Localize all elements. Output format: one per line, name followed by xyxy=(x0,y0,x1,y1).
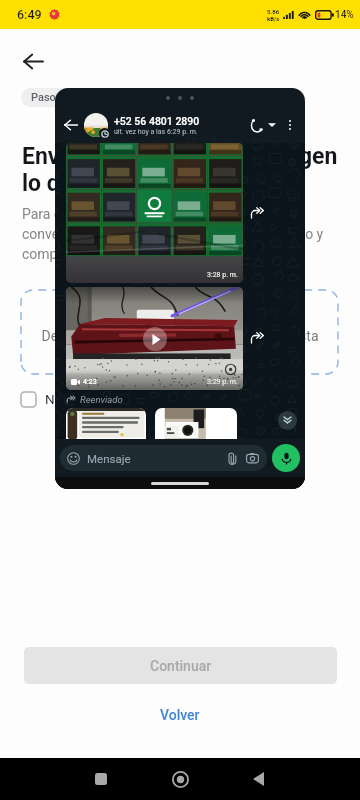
other: Forward xyxy=(250,206,265,221)
button[interactable]: Recent apps xyxy=(80,758,122,800)
button[interactable]: Back xyxy=(61,115,81,135)
staticText: Reenviado xyxy=(80,394,123,405)
staticText: últ. vez hoy a las 6:29 p. m. xyxy=(114,128,198,136)
staticText: 6:49 xyxy=(17,7,42,22)
staticText: 3:28 p. m. xyxy=(207,271,238,279)
button[interactable]: Back xyxy=(18,46,48,76)
staticText: Continuar xyxy=(150,658,212,674)
button[interactable]: Deja aquí tus archivos o cárgalos desde … xyxy=(21,290,338,374)
button[interactable]: Stickers xyxy=(60,445,267,471)
staticText: 14% xyxy=(335,9,354,21)
button[interactable]: Call xyxy=(247,116,265,134)
staticText: 4:23 xyxy=(83,378,97,386)
button[interactable]: Continuar xyxy=(24,647,337,684)
button[interactable]: Voice message xyxy=(272,444,300,472)
staticText: +52 56 4801 2890 xyxy=(114,115,200,127)
other: Forward xyxy=(250,331,265,346)
staticText: No tengo archivos para adjuntar xyxy=(45,391,237,407)
staticText: kB/s xyxy=(267,15,280,22)
button[interactable]: Scroll to bottom xyxy=(278,411,297,430)
button[interactable]: Home xyxy=(159,758,201,800)
staticText: Para entender mejor tu reclamo y convers… xyxy=(22,206,324,262)
other: Camera xyxy=(246,452,259,464)
other: Stickers xyxy=(67,452,80,465)
staticText: Mensaje xyxy=(87,452,131,465)
staticText: 5.86 xyxy=(267,8,280,15)
button[interactable]: More options xyxy=(282,117,298,133)
other: Attach xyxy=(227,452,238,465)
staticText: Volver xyxy=(160,707,200,723)
staticText: Paso 2 de 3 xyxy=(31,91,89,104)
staticText: Deja aquí tus archivos o cárgalos desde … xyxy=(41,328,319,344)
staticText: Envíanos la captura de imagen lo que ocu… xyxy=(22,143,338,197)
staticText: 3:29 p. m. xyxy=(207,378,238,386)
button[interactable]: Volver xyxy=(140,701,220,729)
button[interactable]: No tengo archivos para adjuntar xyxy=(21,388,237,410)
button[interactable]: Paso 2 de 3 xyxy=(21,88,99,107)
button[interactable]: Back xyxy=(237,758,279,800)
